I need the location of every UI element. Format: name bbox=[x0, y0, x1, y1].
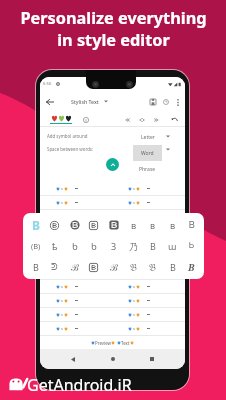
button[interactable]: Letter bbox=[133, 129, 162, 145]
staticText: B bbox=[33, 261, 39, 273]
button[interactable]: ҍ bbox=[45, 237, 64, 255]
staticText: 𝔅 bbox=[130, 263, 137, 272]
button[interactable]: s bbox=[40, 224, 112, 237]
staticText: s bbox=[61, 298, 63, 303]
button[interactable]: s bbox=[40, 294, 112, 307]
button[interactable]: s bbox=[112, 252, 185, 265]
button[interactable]: Emoji bbox=[81, 115, 91, 125]
button[interactable]: Ᏼ bbox=[182, 216, 201, 234]
button[interactable]: s bbox=[112, 322, 185, 335]
button[interactable]: Previous bbox=[122, 114, 133, 125]
staticText: s bbox=[133, 200, 135, 205]
button[interactable]: 𝔅 bbox=[124, 258, 143, 276]
button[interactable]: Word bbox=[133, 145, 162, 161]
button[interactable]: s bbox=[40, 182, 112, 195]
staticText: (B) bbox=[31, 241, 41, 251]
staticText: ℬ bbox=[110, 261, 118, 274]
button[interactable]: 乃 bbox=[124, 237, 143, 255]
staticText: Stylish Text bbox=[71, 98, 99, 105]
button[interactable]: З bbox=[104, 237, 123, 255]
button[interactable]: Favourites bbox=[50, 115, 72, 124]
button[interactable]: s bbox=[40, 238, 112, 251]
staticText: B bbox=[32, 217, 40, 233]
button[interactable]: Back bbox=[66, 352, 80, 366]
staticText: s bbox=[133, 228, 135, 233]
button[interactable]: s bbox=[40, 252, 112, 265]
button[interactable] bbox=[65, 216, 84, 234]
button[interactable]: s bbox=[112, 196, 185, 209]
button[interactable]: 𝔅 bbox=[143, 258, 162, 276]
staticText: ƅ bbox=[91, 240, 97, 253]
button[interactable]: Expand bbox=[106, 158, 119, 171]
button[interactable]: B bbox=[182, 258, 201, 276]
button[interactable]: Save bbox=[146, 95, 159, 108]
button[interactable]: s bbox=[40, 266, 112, 279]
button[interactable] bbox=[84, 216, 103, 234]
staticText: ɯ bbox=[168, 240, 177, 252]
button[interactable]: ƅ bbox=[84, 237, 103, 255]
button[interactable]: B bbox=[26, 258, 45, 276]
staticText: s bbox=[61, 200, 63, 205]
staticText: Personalize everything bbox=[20, 7, 207, 29]
staticText: Ᏼ bbox=[189, 221, 195, 230]
button[interactable]: (B) bbox=[26, 237, 45, 255]
staticText: Space between words: bbox=[47, 146, 94, 152]
staticText: ʙ bbox=[170, 219, 176, 231]
button[interactable]: ƅ bbox=[65, 237, 84, 255]
button[interactable]: s bbox=[112, 266, 185, 279]
button[interactable]: s bbox=[112, 294, 185, 307]
button[interactable]: Next bbox=[150, 114, 161, 125]
button[interactable] bbox=[45, 216, 64, 234]
button[interactable] bbox=[84, 258, 103, 276]
button[interactable]: s bbox=[40, 210, 112, 223]
button[interactable]: В bbox=[163, 258, 182, 276]
button[interactable]: ℬ bbox=[104, 258, 123, 276]
button[interactable]: Undo bbox=[169, 114, 180, 125]
button[interactable]: s bbox=[112, 238, 185, 251]
staticText: s bbox=[133, 284, 135, 289]
button[interactable]: s bbox=[112, 280, 185, 293]
staticText: В bbox=[170, 261, 176, 273]
button[interactable]: Ꮟ bbox=[182, 237, 201, 255]
staticText: s bbox=[61, 186, 63, 191]
button[interactable]: B bbox=[26, 216, 45, 234]
staticText: s bbox=[133, 242, 135, 247]
button[interactable]: s bbox=[112, 182, 185, 195]
button[interactable]: ʙ bbox=[124, 216, 143, 234]
staticText: ƅ bbox=[72, 240, 78, 253]
button[interactable]: s bbox=[112, 308, 185, 321]
staticText: B bbox=[188, 261, 195, 274]
button[interactable]: ɯ bbox=[163, 237, 182, 255]
button[interactable]: ℬ bbox=[65, 258, 84, 276]
button[interactable]: s bbox=[40, 280, 112, 293]
button[interactable]: ʙ bbox=[163, 216, 182, 234]
button[interactable]: s bbox=[40, 322, 112, 335]
staticText: ℬ bbox=[71, 261, 79, 274]
button[interactable]: Brackets bbox=[136, 114, 147, 125]
staticText: З bbox=[111, 240, 117, 252]
staticText: ҍ bbox=[52, 240, 58, 253]
staticText: GetAndroid.iR bbox=[27, 374, 132, 396]
staticText: Letter bbox=[141, 134, 155, 141]
staticText: ʙ bbox=[131, 219, 137, 231]
button[interactable]: History bbox=[159, 95, 172, 108]
staticText: Ꮟ bbox=[189, 242, 195, 250]
button[interactable]: Back bbox=[40, 91, 60, 112]
button[interactable]: s bbox=[112, 224, 185, 237]
staticText: Add symbol around bbox=[47, 133, 88, 139]
button[interactable]: Home bbox=[106, 352, 120, 366]
button[interactable]: s bbox=[40, 196, 112, 209]
button[interactable]: s bbox=[112, 210, 185, 223]
button[interactable]: в bbox=[143, 216, 162, 234]
button[interactable] bbox=[104, 216, 123, 234]
button[interactable]: ᕲ bbox=[45, 258, 64, 276]
button[interactable]: More options bbox=[172, 96, 184, 108]
button[interactable]: Phrase bbox=[133, 161, 162, 177]
button[interactable]: Β bbox=[143, 237, 162, 255]
button[interactable]: s bbox=[40, 308, 112, 321]
button[interactable]: Recents bbox=[145, 352, 159, 366]
